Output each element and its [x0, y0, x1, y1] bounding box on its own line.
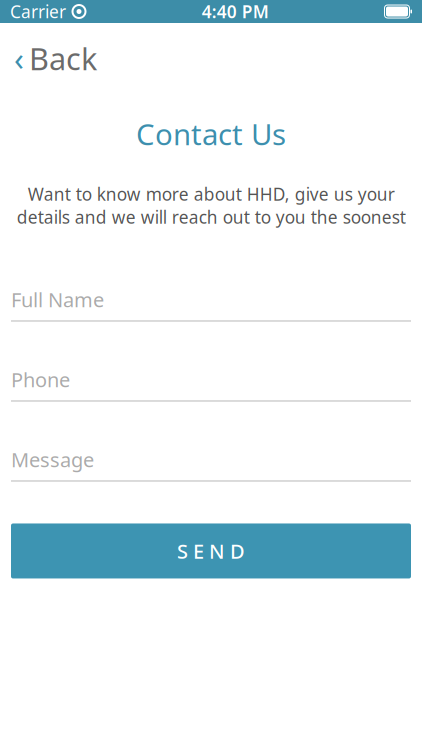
button[interactable]: ‹	[0, 31, 111, 85]
staticText: Back	[29, 38, 97, 79]
staticText: 4:40 PM	[202, 0, 269, 23]
staticText: ‹	[14, 37, 24, 79]
staticText: S E N D	[177, 538, 245, 564]
button[interactable]: S E N D	[11, 523, 411, 578]
staticText: Message	[11, 446, 94, 473]
staticText: Contact Us	[136, 114, 286, 153]
staticText: Full Name	[11, 286, 104, 313]
button[interactable]: Message	[11, 448, 411, 481]
button[interactable]: Full Name	[11, 288, 411, 321]
staticText: Want to know more about HHD, give us you…	[16, 182, 405, 228]
staticText: Carrier	[10, 0, 66, 23]
staticText: Phone	[11, 366, 70, 393]
button[interactable]: Phone	[11, 368, 411, 401]
